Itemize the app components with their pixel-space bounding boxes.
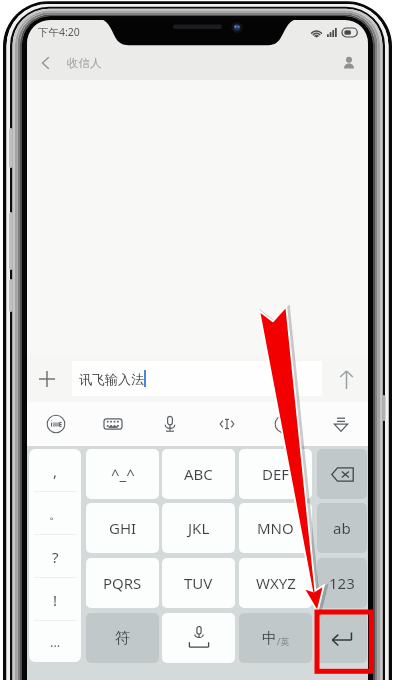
button[interactable]: JKL (162, 503, 235, 553)
button[interactable] (317, 449, 367, 499)
button[interactable]: DEF (239, 449, 312, 499)
staticText: MNO (257, 518, 294, 538)
button[interactable]: WXYZ (239, 558, 312, 608)
staticText: ABC (184, 464, 213, 484)
button[interactable]: … (29, 621, 81, 662)
button[interactable]: Add attachment (33, 365, 61, 393)
staticText: TUV (184, 573, 213, 593)
staticText: … (50, 633, 61, 651)
button[interactable]: cursor (198, 402, 255, 446)
staticText: WXYZ (256, 573, 296, 593)
button[interactable]: 123 (317, 558, 367, 608)
button[interactable]: ! (29, 578, 81, 621)
button[interactable]: kbd (84, 402, 141, 446)
button[interactable]: ^_^ (86, 449, 159, 499)
button[interactable]: ABC (162, 449, 235, 499)
staticText: , (53, 461, 58, 481)
staticText: 123 (329, 573, 355, 593)
button[interactable]: Contacts (336, 50, 362, 76)
button[interactable]: 符 (86, 613, 159, 663)
button[interactable]: 。 (29, 492, 81, 535)
staticText: ? (52, 547, 59, 567)
button[interactable] (162, 613, 235, 663)
button[interactable]: MNO (239, 503, 312, 553)
button[interactable]: Back (31, 49, 59, 77)
button[interactable]: PQRS (86, 558, 159, 608)
button[interactable]: , (29, 449, 81, 492)
staticText: ab (333, 518, 351, 538)
staticText: GHI (109, 518, 137, 538)
button[interactable]: ime (27, 402, 84, 446)
staticText: ! (53, 590, 58, 610)
staticText: /英 (277, 635, 290, 647)
staticText: 符 (115, 629, 130, 648)
button[interactable]: Send (331, 364, 361, 394)
button[interactable]: 中 (239, 613, 312, 663)
button[interactable] (317, 613, 367, 663)
staticText: PQRS (103, 573, 142, 593)
staticText: DEF (262, 464, 290, 484)
button[interactable]: clock (255, 402, 312, 446)
staticText: 讯飞输入法 (79, 371, 144, 387)
staticText: 下午4:20 (38, 25, 80, 39)
staticText: 。 (49, 506, 62, 522)
staticText: ^_^ (111, 464, 135, 484)
button[interactable]: GHI (86, 503, 159, 553)
staticText: 收信人 (67, 56, 102, 70)
button[interactable]: ? (29, 535, 81, 578)
button[interactable]: ab (317, 503, 367, 553)
staticText: JKL (188, 518, 210, 538)
button[interactable]: mic (141, 402, 198, 446)
button[interactable]: hide (312, 402, 369, 446)
button[interactable]: TUV (162, 558, 235, 608)
staticText: 中 (262, 629, 277, 648)
